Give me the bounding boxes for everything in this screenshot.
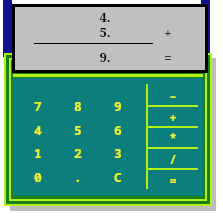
staticText: =	[169, 172, 177, 188]
staticText: 8	[74, 97, 82, 115]
staticText: –	[169, 88, 177, 104]
button[interactable]: Operator –	[148, 86, 198, 105]
staticText: 9.	[99, 48, 111, 63]
staticText: 1	[34, 144, 42, 162]
staticText: 5.	[99, 23, 111, 38]
button[interactable]: Operator *	[148, 128, 198, 147]
staticText: /	[169, 151, 177, 167]
staticText: 4.	[99, 8, 111, 23]
staticText: 0	[34, 168, 42, 186]
button[interactable]: Key 7	[20, 95, 56, 117]
staticText: +	[169, 109, 177, 125]
button[interactable]: Operator /	[148, 149, 198, 168]
staticText: =	[164, 49, 172, 64]
button[interactable]: Key 4	[20, 119, 56, 141]
button[interactable]: Key 3	[100, 142, 136, 164]
button[interactable]: Key 1	[20, 142, 56, 164]
staticText: 4	[34, 121, 42, 139]
staticText: 3	[114, 144, 122, 162]
button[interactable]: Key 0	[20, 166, 56, 188]
staticText: 7	[34, 97, 42, 115]
button[interactable]: Key 5	[60, 119, 96, 141]
button[interactable]: Key .	[60, 166, 96, 188]
staticText: +	[164, 24, 172, 39]
button[interactable]: Key 8	[60, 95, 96, 117]
button[interactable]: Key 9	[100, 95, 136, 117]
button[interactable]: Key 6	[100, 119, 136, 141]
button[interactable]: Operator +	[148, 107, 198, 126]
staticText: 9	[114, 97, 122, 115]
button[interactable]: Operator =	[148, 170, 198, 189]
staticText: .	[74, 168, 82, 186]
staticText: 2	[74, 144, 82, 162]
staticText: 5	[74, 121, 82, 139]
button[interactable]: Key 2	[60, 142, 96, 164]
staticText: C	[114, 168, 122, 186]
staticText: *	[169, 130, 177, 146]
staticText: 6	[114, 121, 122, 139]
button[interactable]: Key C	[100, 166, 136, 188]
